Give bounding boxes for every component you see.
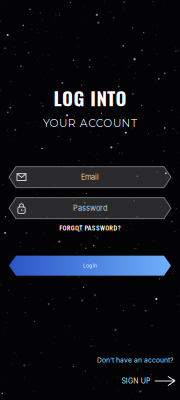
- button[interactable]: Email: [0, 167, 180, 188]
- staticText: LOG INTO: [54, 84, 126, 112]
- staticText: SIGN UP: [122, 377, 150, 385]
- button[interactable]: FORGOT PASSWORD?: [0, 219, 180, 238]
- button[interactable]: Password: [0, 198, 180, 219]
- staticText: Log in: [83, 263, 97, 269]
- staticText: YOUR ACCOUNT: [43, 117, 137, 130]
- staticText: Don't have an account?: [97, 356, 173, 364]
- button[interactable]: SIGN UP: [122, 376, 175, 386]
- button[interactable]: Log in: [0, 256, 180, 276]
- staticText: Password: [73, 204, 107, 213]
- staticText: Email: [81, 173, 99, 182]
- staticText: FORGOT PASSWORD?: [59, 224, 121, 232]
